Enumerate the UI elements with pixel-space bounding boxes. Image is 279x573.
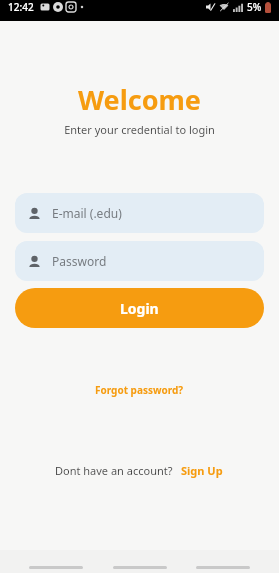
button[interactable]: Sign Up bbox=[179, 461, 225, 480]
staticText: E-mail (.edu) bbox=[52, 205, 122, 221]
button[interactable]: Password bbox=[15, 241, 264, 281]
button[interactable]: Navigation bbox=[29, 566, 83, 569]
staticText: Welcome bbox=[0, 81, 279, 118]
staticText: Sign Up bbox=[181, 463, 223, 478]
staticText: Forgot password? bbox=[95, 383, 184, 397]
staticText: 5% bbox=[247, 0, 262, 14]
button[interactable]: E-mail (.edu) bbox=[15, 193, 264, 233]
button[interactable]: Login bbox=[15, 288, 264, 328]
staticText: Enter your credential to login bbox=[0, 122, 279, 137]
button[interactable]: Forgot password? bbox=[89, 380, 190, 400]
button[interactable]: Navigation bbox=[196, 566, 250, 569]
staticText: Login bbox=[120, 299, 159, 318]
button[interactable]: Navigation bbox=[113, 566, 167, 569]
staticText: Password bbox=[52, 253, 107, 269]
staticText: 12:42 bbox=[8, 0, 34, 14]
staticText: Dont have an account? bbox=[55, 463, 173, 478]
